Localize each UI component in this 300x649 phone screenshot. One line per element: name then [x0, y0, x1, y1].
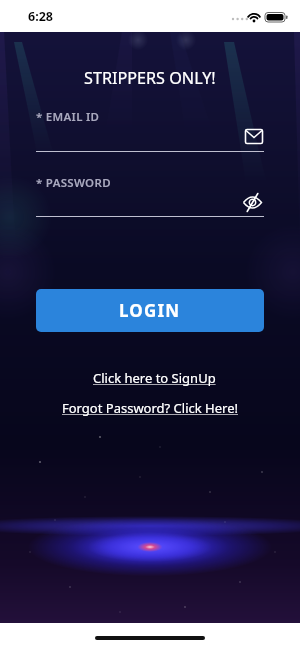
staticText: STRIPPERS ONLY! — [84, 67, 216, 89]
staticText: * PASSWORD — [36, 175, 111, 191]
button[interactable]: Forgot Password? Click Here! — [62, 399, 238, 417]
button[interactable]: Click here to SignUp — [93, 369, 216, 387]
staticText: * EMAIL ID — [36, 109, 100, 125]
staticText: 6:28 — [28, 8, 53, 25]
button[interactable] — [36, 189, 264, 217]
staticText: Click here to SignUp — [93, 369, 216, 387]
staticText: Forgot Password? Click Here! — [62, 399, 238, 417]
button[interactable] — [243, 195, 262, 210]
button[interactable] — [36, 124, 264, 152]
button[interactable]: LOGIN — [36, 289, 264, 332]
staticText: LOGIN — [119, 299, 181, 322]
